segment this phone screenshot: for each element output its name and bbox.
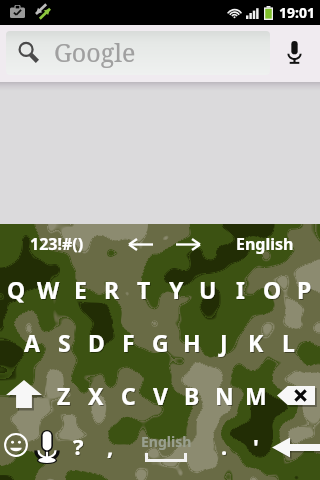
staticText: ? [73, 431, 84, 461]
button[interactable]: K [240, 318, 272, 370]
button[interactable]: T [128, 265, 160, 317]
button[interactable]: ? [62, 419, 94, 476]
button[interactable]: E [64, 265, 96, 317]
button[interactable]: V [144, 371, 176, 423]
button[interactable]: ' [240, 419, 272, 476]
staticText: L [283, 328, 296, 359]
button[interactable]: Z [48, 371, 80, 423]
staticText: F [122, 327, 135, 358]
staticText: V [154, 381, 169, 412]
button[interactable]: Voice search [278, 36, 310, 68]
staticText: R [105, 275, 121, 306]
button[interactable]: Voice input [31, 419, 63, 476]
staticText: H [184, 328, 202, 359]
staticText: N [215, 380, 234, 411]
staticText: K [248, 327, 264, 358]
staticText: R [104, 274, 120, 305]
staticText: Q [7, 274, 26, 305]
button[interactable]: Move cursor left [120, 224, 161, 265]
button[interactable]: Y [160, 265, 192, 317]
button[interactable]: Shift [0, 371, 48, 423]
button[interactable]: N [208, 371, 240, 423]
staticText: E [74, 274, 87, 305]
staticText: U [200, 275, 218, 306]
staticText: M [245, 380, 267, 411]
button[interactable]: M [240, 371, 272, 423]
staticText: English [141, 432, 192, 451]
staticText: ' [253, 431, 259, 461]
staticText: G [153, 328, 170, 359]
staticText: B [184, 380, 200, 411]
staticText: U [199, 274, 217, 305]
button[interactable]: 123!#() [13, 224, 101, 265]
button[interactable]: G [144, 318, 176, 370]
staticText: Z [58, 381, 72, 412]
staticText: A [25, 328, 41, 359]
staticText: G [152, 327, 169, 358]
staticText: N [216, 381, 235, 412]
staticText: J [221, 328, 229, 359]
staticText: W [38, 275, 61, 306]
button[interactable]: English [225, 224, 305, 265]
button[interactable]: Move cursor right [167, 224, 208, 265]
staticText: H [183, 327, 201, 358]
staticText: D [89, 328, 106, 359]
staticText: S [58, 327, 71, 358]
staticText: . [222, 432, 229, 462]
staticText: T [137, 274, 151, 305]
staticText: ? [74, 432, 85, 462]
staticText: X [89, 381, 105, 412]
staticText: C [121, 380, 136, 411]
button[interactable]: B [176, 371, 208, 423]
button[interactable]: A [16, 318, 48, 370]
button[interactable]: C [112, 371, 144, 423]
button[interactable]: I [224, 265, 256, 317]
staticText: . [221, 431, 228, 461]
button[interactable]: Q [0, 265, 32, 317]
staticText: O [263, 274, 282, 305]
staticText: X [88, 380, 104, 411]
staticText: J [220, 327, 228, 358]
staticText: L [282, 327, 295, 358]
button[interactable]: , [94, 419, 126, 476]
button[interactable]: Google [6, 31, 270, 75]
staticText: V [153, 380, 168, 411]
staticText: P [297, 274, 312, 305]
staticText: Z [57, 380, 71, 411]
button[interactable]: S [48, 318, 80, 370]
staticText: Q [8, 275, 27, 306]
button[interactable]: Enter [272, 419, 320, 476]
staticText: ' [254, 432, 260, 462]
staticText: W [37, 274, 60, 305]
staticText: Google [54, 35, 136, 69]
staticText: A [24, 327, 40, 358]
staticText: P [298, 275, 313, 306]
button[interactable]: . [208, 419, 240, 476]
button[interactable]: O [256, 265, 288, 317]
staticText: T [138, 275, 152, 306]
button[interactable]: L [272, 318, 304, 370]
button[interactable]: Backspace [272, 371, 320, 423]
staticText: , [108, 432, 115, 462]
button[interactable]: D [80, 318, 112, 370]
staticText: B [185, 381, 201, 412]
staticText: 123!#() [30, 233, 84, 255]
staticText: I [236, 274, 245, 305]
staticText: Y [170, 275, 185, 306]
button[interactable]: English [126, 419, 206, 476]
button[interactable]: X [80, 371, 112, 423]
staticText: English [236, 233, 294, 255]
button[interactable]: U [192, 265, 224, 317]
button[interactable]: Emoji [0, 419, 32, 476]
staticText: F [123, 328, 136, 359]
button[interactable]: H [176, 318, 208, 370]
staticText: O [264, 275, 283, 306]
button[interactable]: J [208, 318, 240, 370]
button[interactable]: W [32, 265, 64, 317]
button[interactable]: F [112, 318, 144, 370]
button[interactable]: R [96, 265, 128, 317]
staticText: S [59, 328, 72, 359]
button[interactable]: P [288, 265, 320, 317]
staticText: C [122, 381, 137, 412]
staticText: I [237, 275, 246, 306]
